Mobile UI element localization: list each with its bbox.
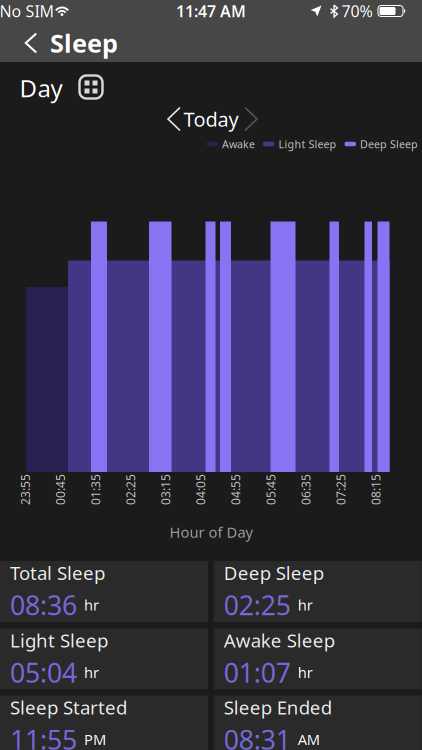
staticText: Deep Sleep <box>224 560 324 585</box>
staticText: Deep Sleep <box>360 137 418 151</box>
staticText: Light Sleep <box>10 628 108 653</box>
staticText: Day <box>19 72 62 104</box>
staticText: Hour of Day <box>169 522 252 542</box>
staticText: 01:35 <box>80 481 111 497</box>
staticText: 02:25 <box>224 587 291 623</box>
staticText: Today <box>183 106 238 132</box>
staticText: Sleep Started <box>10 695 127 720</box>
staticText: 02:25 <box>115 481 146 497</box>
staticText: 23:55 <box>10 481 41 497</box>
staticText: 70% <box>341 0 372 22</box>
staticText: 03:15 <box>150 481 181 497</box>
staticText: Sleep Ended <box>224 695 332 720</box>
staticText: hr <box>84 663 99 682</box>
staticText: Light Sleep <box>278 137 336 151</box>
button[interactable]: Next day <box>237 104 265 134</box>
button[interactable]: Back <box>11 23 51 63</box>
staticText: PM <box>84 730 106 749</box>
staticText: 08:36 <box>10 587 77 623</box>
staticText: 08:15 <box>360 481 391 497</box>
button[interactable]: Grid view <box>76 72 106 102</box>
staticText: AM <box>298 730 320 749</box>
staticText: 05:45 <box>255 481 286 497</box>
staticText: 08:31 <box>224 722 291 750</box>
staticText: 04:55 <box>220 481 251 497</box>
staticText: 05:04 <box>10 655 77 690</box>
staticText: Awake Sleep <box>224 628 335 653</box>
staticText: hr <box>298 595 313 615</box>
staticText: Total Sleep <box>10 560 105 585</box>
staticText: No SIM <box>0 0 54 22</box>
staticText: 01:07 <box>224 655 291 690</box>
staticText: 11:55 <box>10 722 77 750</box>
button[interactable]: Previous day <box>160 104 188 134</box>
staticText: 04:05 <box>185 481 216 497</box>
staticText: 07:25 <box>325 481 356 497</box>
staticText: Sleep <box>50 26 118 60</box>
staticText: hr <box>84 595 99 615</box>
staticText: Awake <box>222 137 255 151</box>
staticText: hr <box>298 663 313 682</box>
staticText: 11:47 AM <box>176 0 246 22</box>
staticText: 06:35 <box>290 481 321 497</box>
staticText: 00:45 <box>45 481 76 497</box>
